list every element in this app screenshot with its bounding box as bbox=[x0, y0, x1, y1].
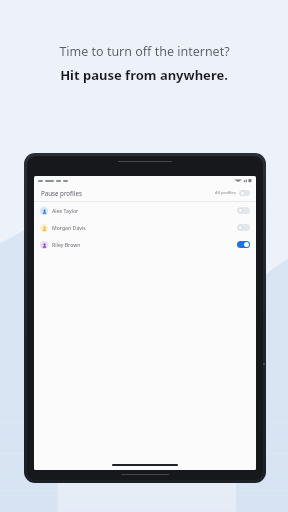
staticText: Morgan Davis bbox=[52, 224, 86, 231]
staticText: Pause profiles bbox=[41, 189, 82, 197]
button[interactable]: Pause off bbox=[239, 190, 250, 196]
button[interactable]: Pause profiles bbox=[34, 185, 256, 201]
staticText: All profiles bbox=[215, 190, 236, 196]
staticText: Alex Taylor bbox=[52, 207, 79, 214]
staticText: Time to turn off the internet? bbox=[59, 43, 230, 60]
staticText: Riley Brown bbox=[52, 241, 81, 248]
staticText: Hit pause from anywhere. bbox=[60, 66, 228, 84]
button[interactable]: Pause off bbox=[237, 207, 250, 214]
button[interactable]: Riley Brown bbox=[34, 236, 256, 253]
button[interactable]: Pause off bbox=[237, 224, 250, 231]
button[interactable]: Alex Taylor bbox=[34, 202, 256, 219]
button[interactable]: Pause on bbox=[237, 241, 250, 248]
button[interactable]: Morgan Davis bbox=[34, 219, 256, 236]
